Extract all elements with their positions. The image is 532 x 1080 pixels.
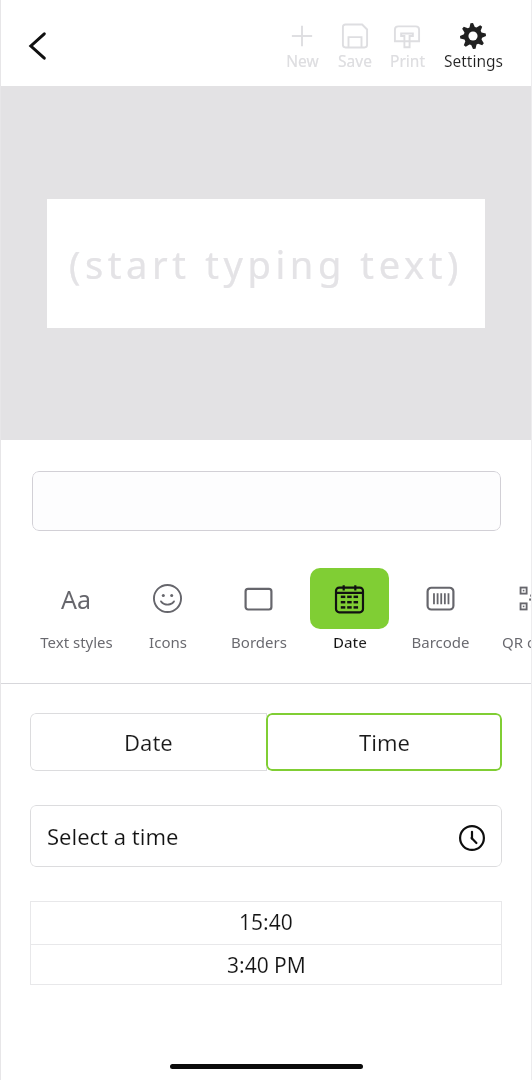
staticText: New [286, 50, 319, 71]
button[interactable]: QR code [486, 568, 532, 652]
button[interactable]: Barcode [395, 568, 486, 652]
button[interactable]: Print [374, 23, 440, 71]
staticText: Settings [444, 50, 503, 71]
staticText: Barcode [411, 632, 470, 652]
staticText: Date [124, 727, 173, 757]
button[interactable]: Aa [31, 568, 122, 652]
button[interactable]: (start typing text) [47, 199, 485, 328]
staticText: Save [338, 50, 372, 71]
button[interactable] [32, 471, 501, 531]
button[interactable]: Select a time [30, 805, 502, 867]
staticText: Print [390, 50, 425, 71]
staticText: Aa [61, 582, 92, 616]
staticText: Text styles [40, 632, 113, 652]
button[interactable]: Save [322, 23, 388, 71]
staticText: Icons [149, 632, 187, 652]
button[interactable]: Icons [122, 568, 213, 652]
button[interactable]: Back [15, 23, 60, 68]
staticText: Date [333, 632, 367, 652]
button[interactable]: Settings [440, 23, 506, 71]
button[interactable]: Date [304, 568, 395, 652]
staticText: (start typing text) [69, 238, 463, 290]
button[interactable]: 3:40 PM [30, 945, 502, 985]
button[interactable]: 15:40 [30, 901, 502, 944]
button[interactable]: Date [30, 713, 267, 771]
button[interactable]: Time [266, 713, 502, 771]
staticText: Select a time [47, 821, 179, 851]
button[interactable]: Borders [213, 568, 304, 652]
staticText: QR code [502, 632, 532, 652]
staticText: Time [359, 727, 410, 757]
button[interactable]: New [269, 23, 335, 71]
staticText: Borders [231, 632, 287, 652]
staticText: 15:40 [239, 908, 293, 937]
staticText: 3:40 PM [227, 951, 306, 980]
